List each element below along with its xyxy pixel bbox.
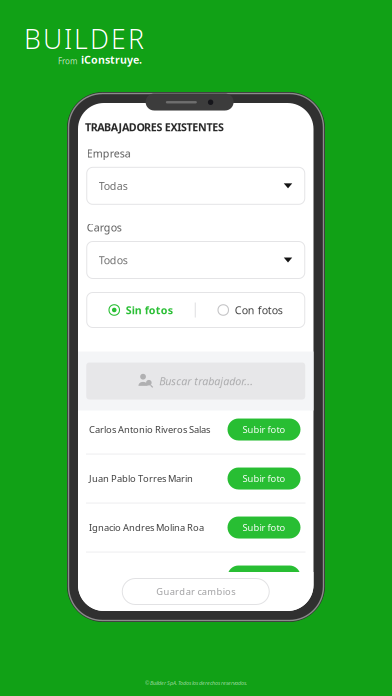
staticText: From [58,56,77,67]
staticText: TRABAJADORES EXISTENTES [85,120,224,134]
button[interactable]: Subir foto [227,418,300,440]
staticText: Guardar cambios [156,585,235,598]
staticText: iConstruye. [81,52,142,67]
staticText: Subir foto [242,423,285,436]
button[interactable]: Sin fotos [109,303,173,317]
button[interactable]: Todos [87,241,305,278]
button[interactable]: Con fotos [218,303,283,317]
staticText: Empresa [87,146,131,160]
staticText: Ignacio Andres Molina Roa [89,521,204,534]
button[interactable]: Subir foto [227,516,300,538]
staticText: Buscar trabajador... [159,374,253,388]
staticText: Todas [99,179,128,193]
button[interactable]: Buscar trabajador... [86,362,305,399]
staticText: Sin fotos [126,303,173,317]
staticText: Carlos Antonio Riveros Salas [89,423,210,436]
staticText: Subir foto [242,570,285,583]
staticText: BUILDER [24,21,144,56]
staticText: Cargos [87,220,122,234]
button[interactable]: Guardar cambios [122,578,269,604]
staticText: Subir foto [242,472,285,485]
staticText: Subir foto [242,521,285,534]
staticText: Pedro Gonzalez Perez [89,570,183,583]
button[interactable]: Subir foto [227,467,300,489]
staticText: Juan Pablo Torres Marin [89,472,193,485]
button[interactable]: Subir foto [227,565,300,587]
staticText: Todos [99,253,128,267]
staticText: Con fotos [235,303,283,317]
staticText: © Builder SpA. Todos los derechos reserv… [145,679,247,687]
button[interactable]: Todas [87,167,305,204]
